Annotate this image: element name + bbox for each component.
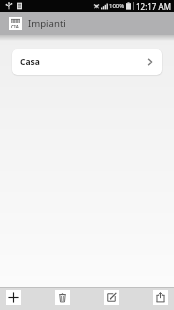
staticText: 100%: [109, 2, 125, 10]
button[interactable]: Casa: [12, 49, 162, 75]
staticText: CIAS: [11, 24, 20, 28]
button[interactable]: Delete: [55, 290, 70, 305]
staticText: Impianti: [28, 17, 66, 30]
button[interactable]: Edit: [104, 290, 119, 305]
button[interactable]: Share: [153, 290, 168, 305]
staticText: 12:17 AM: [136, 1, 171, 12]
button[interactable]: Add: [6, 290, 21, 305]
staticText: Casa: [20, 56, 40, 68]
